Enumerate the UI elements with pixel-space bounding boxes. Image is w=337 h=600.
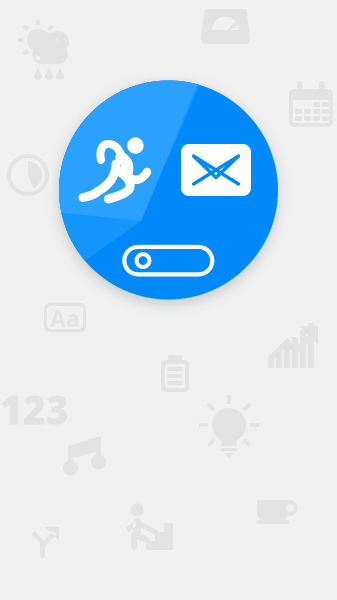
button[interactable]: Activity, Mail and Settings (0, 0, 337, 600)
staticText: Aa (50, 303, 80, 333)
staticText: 123 (0, 382, 68, 435)
